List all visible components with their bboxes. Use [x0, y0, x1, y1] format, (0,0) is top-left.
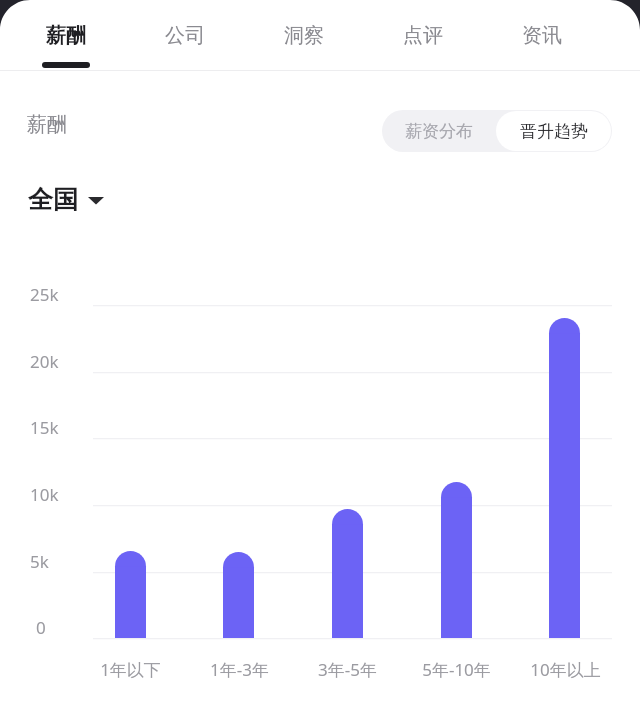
button[interactable]: 资讯	[500, 4, 584, 66]
staticText: 25k	[30, 283, 59, 306]
button[interactable]: 晋升趋势	[496, 111, 611, 151]
button[interactable]: 点评	[381, 4, 465, 66]
staticText: 资讯	[522, 23, 562, 48]
other: 选择地区	[88, 194, 104, 206]
staticText: 薪酬	[46, 23, 86, 48]
button[interactable]: 洞察	[262, 4, 346, 66]
staticText: 公司	[165, 23, 205, 48]
button[interactable]: 薪酬	[24, 4, 108, 66]
staticText: 点评	[403, 23, 443, 48]
staticText: 1年以下	[100, 658, 161, 681]
staticText: 1年-3年	[210, 658, 269, 681]
staticText: 薪资分布	[405, 121, 473, 142]
staticText: 15k	[30, 416, 59, 439]
staticText: 5年-10年	[422, 658, 491, 681]
staticText: 3年-5年	[318, 658, 377, 681]
button[interactable]: 公司	[143, 4, 227, 66]
staticText: 薪酬	[27, 112, 67, 137]
staticText: 10k	[30, 483, 59, 506]
staticText: 10年以上	[530, 658, 601, 681]
button[interactable]: 薪资分布	[382, 110, 496, 152]
staticText: 全国	[28, 184, 78, 215]
staticText: 洞察	[284, 23, 324, 48]
staticText: 20k	[30, 350, 59, 373]
button[interactable]: 全国	[28, 184, 104, 215]
staticText: 5k	[30, 550, 49, 573]
staticText: 晋升趋势	[520, 121, 588, 142]
staticText: 0	[36, 616, 46, 639]
